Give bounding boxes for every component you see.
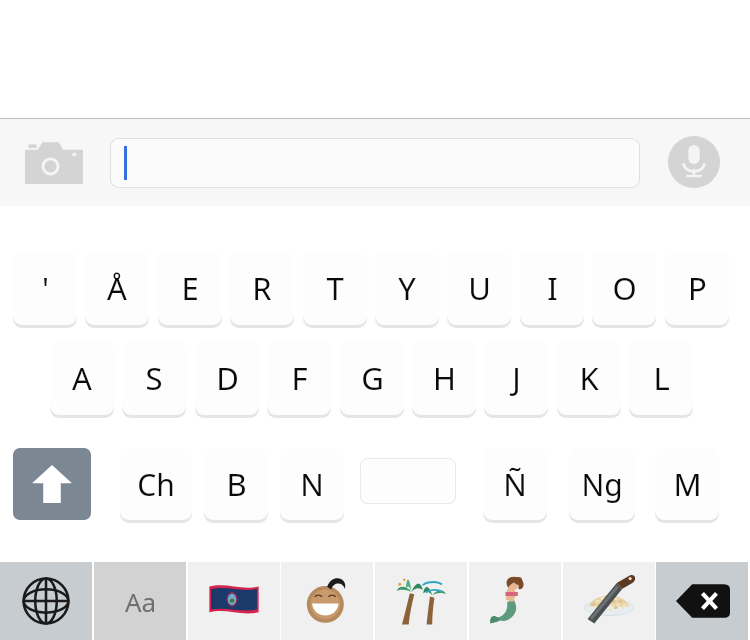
button[interactable]: N <box>280 448 344 520</box>
button[interactable]: Ch <box>120 448 192 520</box>
button[interactable]: G <box>340 341 404 415</box>
button[interactable]: Mermaid emoji <box>469 562 561 640</box>
staticText: A <box>72 357 92 399</box>
button[interactable]: T <box>303 251 367 325</box>
button[interactable]: Shift <box>13 448 91 520</box>
button[interactable]: B <box>204 448 268 520</box>
button[interactable]: J <box>484 341 548 415</box>
button[interactable]: D <box>195 341 259 415</box>
button[interactable]: Camera <box>22 136 86 188</box>
button[interactable]: Space <box>360 458 456 504</box>
button[interactable]: Food emoji <box>563 562 655 640</box>
button[interactable]: F <box>267 341 331 415</box>
staticText: Y <box>398 267 416 309</box>
staticText: H <box>433 357 456 399</box>
button[interactable]: Å <box>85 251 149 325</box>
staticText: F <box>291 357 308 399</box>
staticText: Ñ <box>503 463 527 505</box>
staticText: S <box>145 357 163 399</box>
staticText: R <box>252 267 272 309</box>
staticText: I <box>547 267 558 309</box>
staticText: Ng <box>581 464 623 505</box>
button[interactable]: P <box>665 251 729 325</box>
button[interactable]: H <box>412 341 476 415</box>
button[interactable]: Ñ <box>483 448 547 520</box>
button[interactable]: ' <box>13 251 77 325</box>
staticText: P <box>688 267 707 309</box>
staticText: L <box>653 357 670 399</box>
button[interactable]: I <box>520 251 584 325</box>
staticText: K <box>579 357 599 399</box>
button[interactable]: Flag emoji <box>188 562 280 640</box>
button[interactable]: Switch language <box>0 562 92 640</box>
staticText: E <box>181 267 199 309</box>
button[interactable]: A <box>50 341 114 415</box>
button[interactable]: M <box>655 448 719 520</box>
button[interactable]: Delete <box>656 562 748 640</box>
staticText: B <box>226 463 247 505</box>
staticText: ' <box>42 267 49 309</box>
staticText: Aa <box>125 584 157 619</box>
button[interactable]: Palm tree emoji <box>375 562 467 640</box>
staticText: O <box>612 267 637 309</box>
staticText: M <box>673 463 702 505</box>
button[interactable]: Voice input <box>668 136 720 188</box>
button[interactable]: O <box>592 251 656 325</box>
button[interactable]: E <box>158 251 222 325</box>
staticText: U <box>468 267 491 309</box>
button[interactable]: R <box>230 251 294 325</box>
staticText: T <box>326 267 344 309</box>
button[interactable] <box>110 138 640 188</box>
button[interactable]: Text style <box>94 562 186 640</box>
button[interactable]: Face emoji <box>281 562 373 640</box>
button[interactable]: Ng <box>569 448 635 520</box>
button[interactable]: K <box>557 341 621 415</box>
button[interactable]: Y <box>375 251 439 325</box>
staticText: Å <box>107 267 127 309</box>
button[interactable]: U <box>447 251 511 325</box>
staticText: D <box>216 357 239 399</box>
staticText: Ch <box>137 464 175 505</box>
staticText: N <box>300 463 324 505</box>
staticText: G <box>361 357 384 399</box>
button[interactable]: L <box>629 341 693 415</box>
button[interactable]: S <box>122 341 186 415</box>
staticText: J <box>512 357 521 399</box>
